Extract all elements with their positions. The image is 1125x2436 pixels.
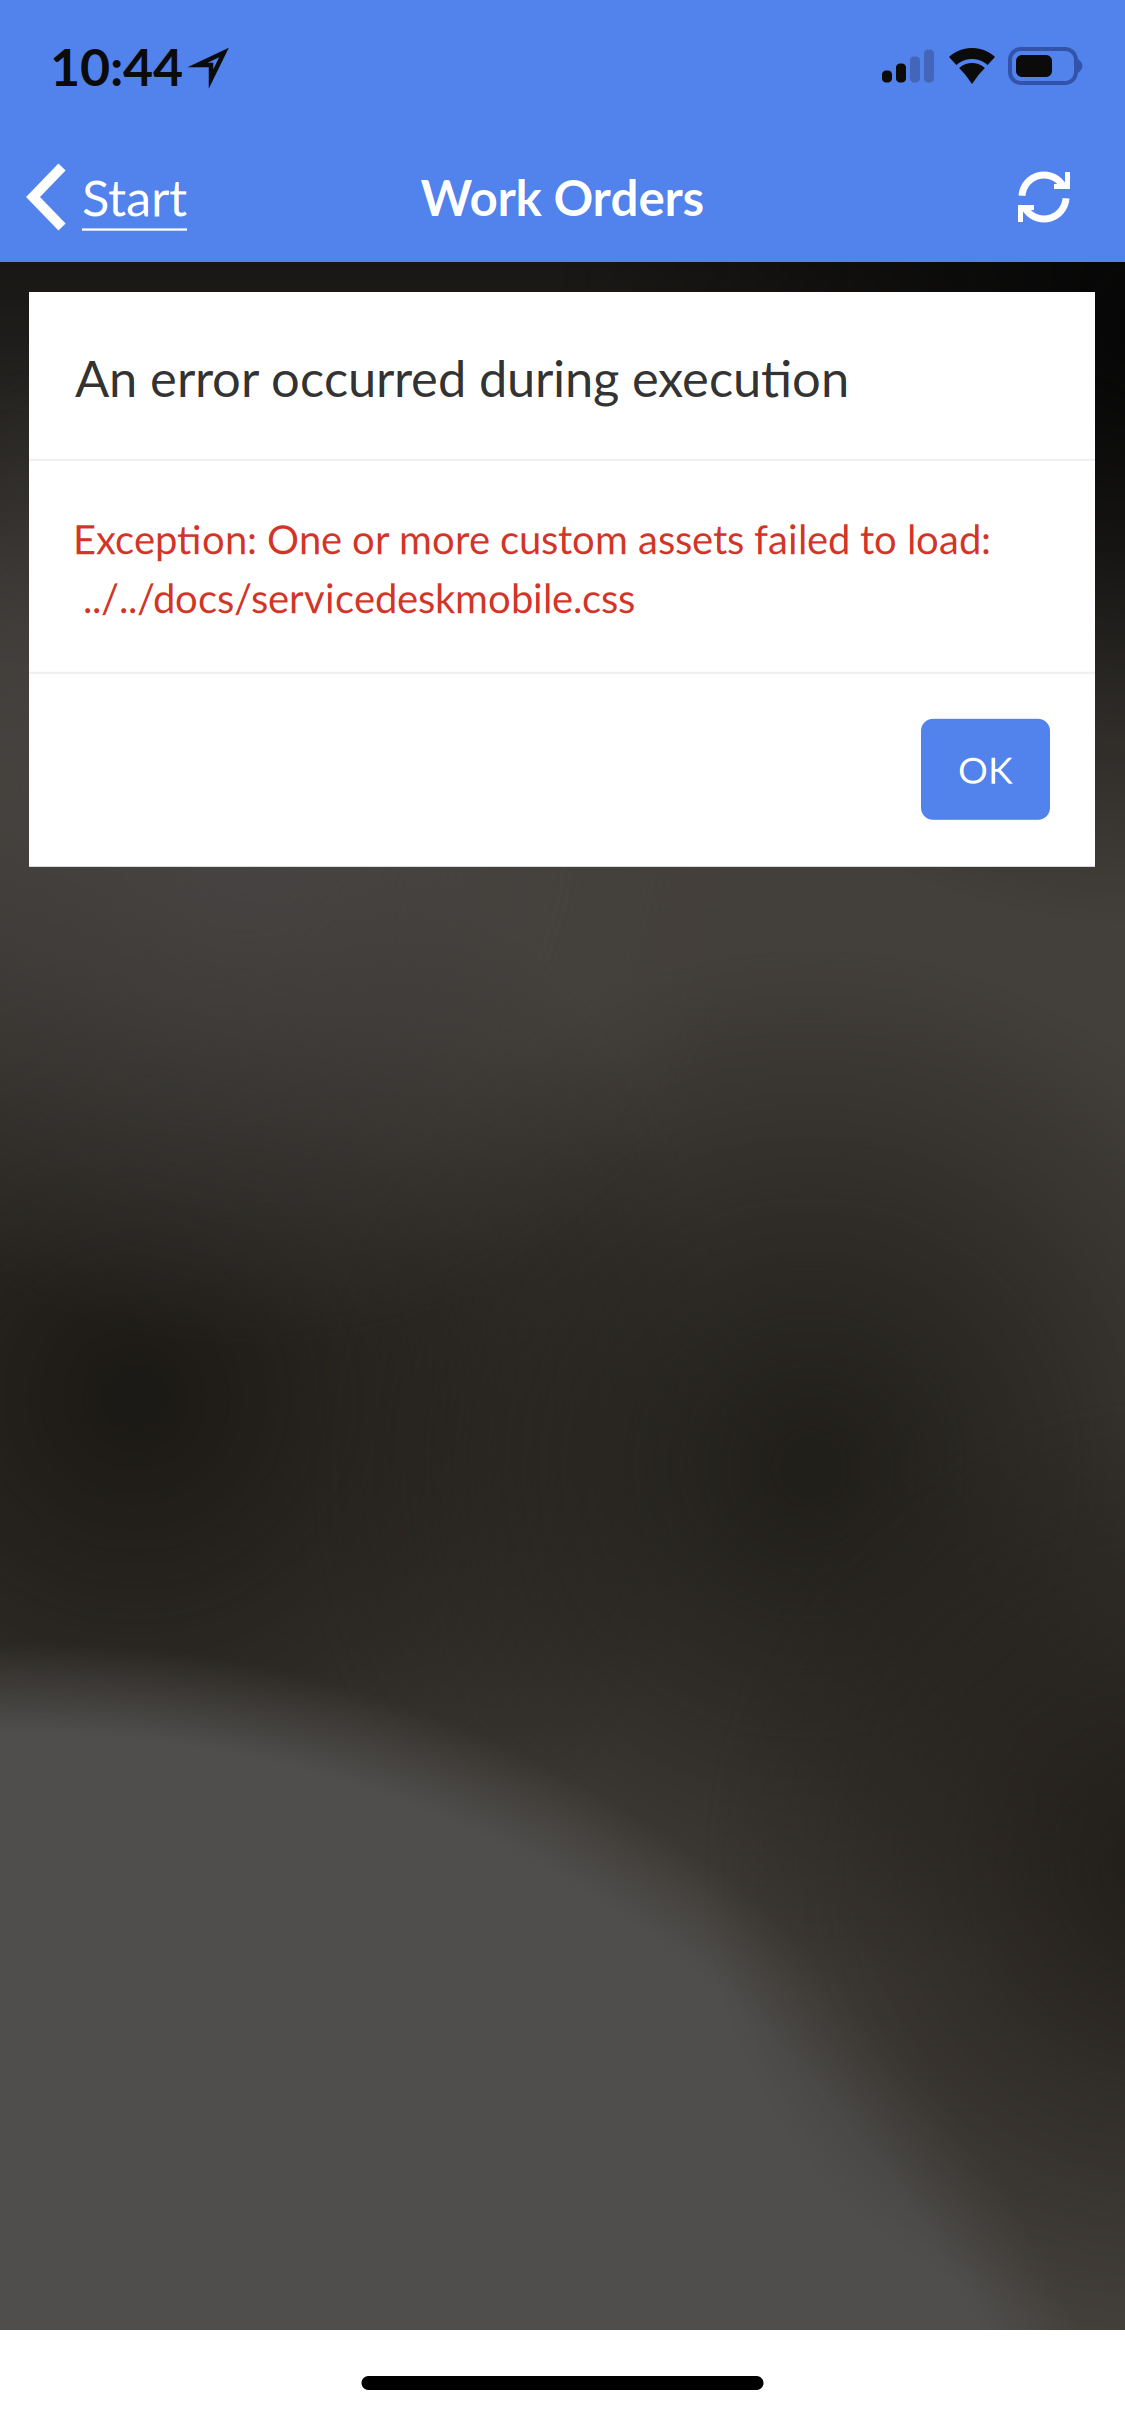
button[interactable]: Start xyxy=(0,132,209,262)
staticText: Start xyxy=(82,167,187,227)
staticText: An error occurred during execution xyxy=(75,347,849,408)
staticText: OK xyxy=(958,747,1013,792)
staticText: Work Orders xyxy=(420,167,704,227)
staticText: 10:44 xyxy=(50,35,183,97)
staticText: ../../docs/servicedeskmobile.css xyxy=(73,574,635,622)
button[interactable]: Refresh xyxy=(987,132,1125,262)
button[interactable]: OK xyxy=(921,719,1050,820)
staticText: Exception: One or more custom assets fai… xyxy=(73,515,991,563)
